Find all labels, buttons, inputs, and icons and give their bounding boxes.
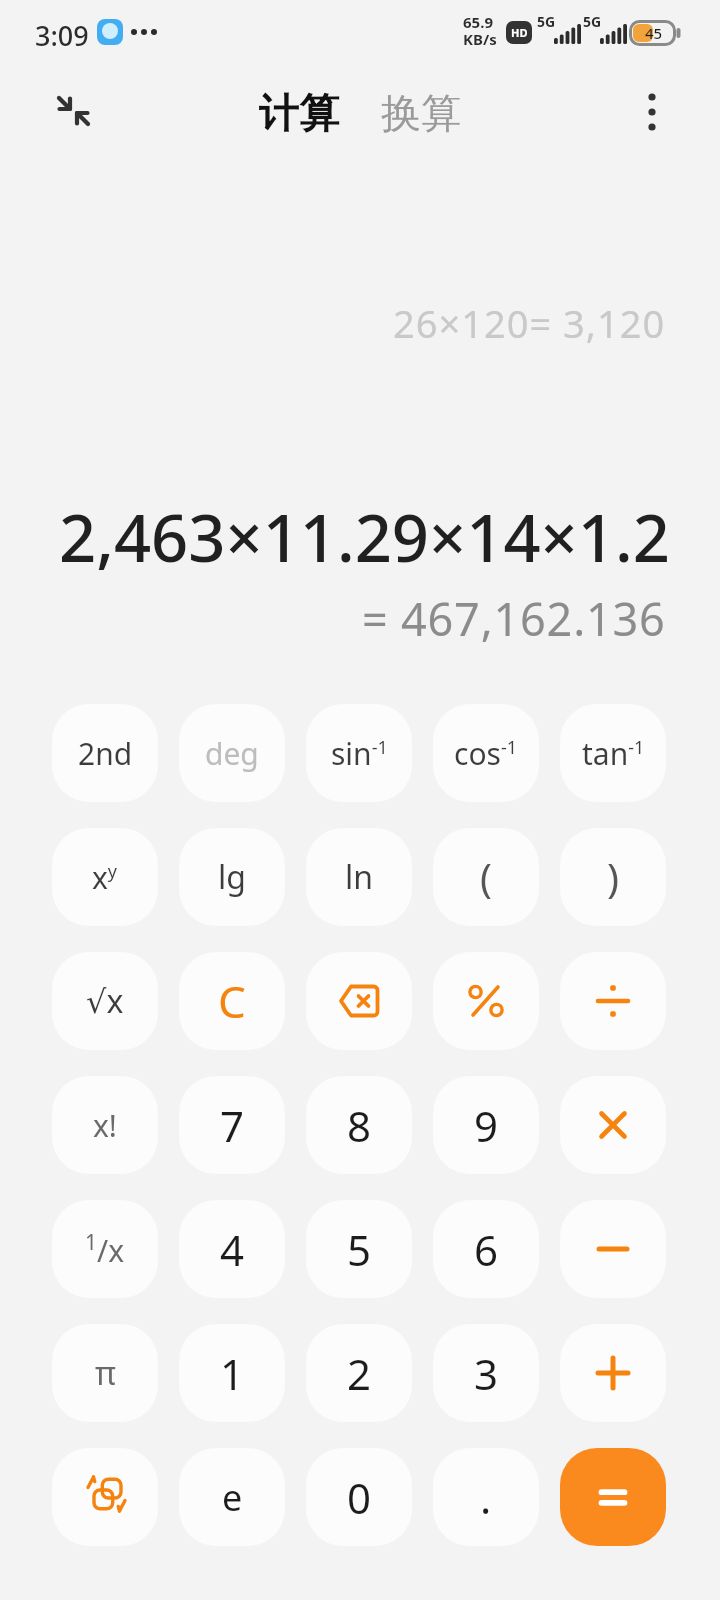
staticText: 5G — [537, 12, 556, 31]
button[interactable]: 1/x — [52, 1200, 158, 1298]
button[interactable]: xy — [52, 828, 158, 926]
button[interactable]: 8 — [306, 1076, 412, 1174]
staticText: 8 — [347, 1097, 372, 1154]
staticText: 2,463×11.29×14×1.2 — [59, 493, 670, 582]
button[interactable]: ) — [560, 828, 666, 926]
staticText: tan-1 — [582, 733, 645, 774]
button[interactable]: 2nd — [52, 704, 158, 802]
staticText: 1 — [220, 1345, 245, 1402]
staticText: √x — [86, 979, 124, 1023]
button[interactable]: x! — [52, 1076, 158, 1174]
staticText: 换算 — [381, 88, 461, 138]
button[interactable]: 7 — [179, 1076, 285, 1174]
staticText: 9 — [474, 1097, 499, 1154]
staticText: . — [480, 1469, 492, 1526]
button[interactable] — [560, 1324, 666, 1422]
button[interactable]: 6 — [433, 1200, 539, 1298]
button[interactable] — [560, 1076, 666, 1174]
staticText: sin-1 — [331, 733, 388, 774]
button[interactable]: cos-1 — [433, 704, 539, 802]
button[interactable] — [560, 952, 666, 1050]
button[interactable]: C — [179, 952, 285, 1050]
staticText: ) — [607, 850, 619, 904]
button[interactable]: ( — [433, 828, 539, 926]
button[interactable]: sin-1 — [306, 704, 412, 802]
button[interactable] — [560, 1200, 666, 1298]
staticText: 7 — [220, 1097, 245, 1154]
button[interactable]: 计算 — [259, 88, 339, 138]
button[interactable] — [57, 94, 91, 128]
staticText: 5 — [347, 1221, 372, 1278]
staticText: xy — [92, 857, 118, 898]
staticText: lg — [218, 855, 246, 899]
button[interactable] — [433, 952, 539, 1050]
button[interactable] — [640, 92, 664, 132]
button[interactable]: 4 — [179, 1200, 285, 1298]
staticText: HD — [511, 25, 528, 40]
button[interactable]: 9 — [433, 1076, 539, 1174]
staticText: 0 — [347, 1469, 372, 1526]
button[interactable]: . — [433, 1448, 539, 1546]
staticText: ln — [345, 855, 374, 899]
staticText: ( — [480, 850, 492, 904]
staticText: 3:09 — [35, 17, 89, 54]
button[interactable]: 5 — [306, 1200, 412, 1298]
staticText: 1/x — [85, 1228, 125, 1270]
button[interactable]: π — [52, 1324, 158, 1422]
button[interactable] — [52, 1448, 158, 1546]
staticText: π — [95, 1351, 116, 1395]
button[interactable]: e — [179, 1448, 285, 1546]
button[interactable]: 3 — [433, 1324, 539, 1422]
button[interactable]: deg — [179, 704, 285, 802]
button[interactable]: ln — [306, 828, 412, 926]
staticText: KB/s — [463, 29, 497, 49]
staticText: = 467,162.136 — [362, 588, 666, 649]
staticText: C — [218, 971, 246, 1031]
button[interactable]: 换算 — [381, 88, 461, 138]
staticText: 6 — [474, 1221, 499, 1278]
staticText: 65.9 — [463, 12, 493, 32]
staticText: 2 — [347, 1345, 372, 1402]
staticText: 26×120= 3,120 — [393, 297, 666, 349]
staticText: 45 — [645, 23, 663, 43]
staticText: 3 — [474, 1345, 499, 1402]
button[interactable]: 1 — [179, 1324, 285, 1422]
button[interactable] — [306, 952, 412, 1050]
button[interactable]: √x — [52, 952, 158, 1050]
staticText: x! — [93, 1105, 117, 1146]
staticText: 计算 — [259, 88, 339, 138]
staticText: e — [222, 1473, 243, 1522]
button[interactable]: 0 — [306, 1448, 412, 1546]
button[interactable]: 2 — [306, 1324, 412, 1422]
staticText: deg — [205, 733, 259, 774]
button[interactable]: lg — [179, 828, 285, 926]
staticText: 5G — [583, 12, 602, 31]
staticText: 4 — [220, 1221, 245, 1278]
button[interactable] — [560, 1448, 666, 1546]
staticText: 2nd — [78, 733, 133, 774]
staticText: cos-1 — [454, 733, 518, 774]
button[interactable]: tan-1 — [560, 704, 666, 802]
